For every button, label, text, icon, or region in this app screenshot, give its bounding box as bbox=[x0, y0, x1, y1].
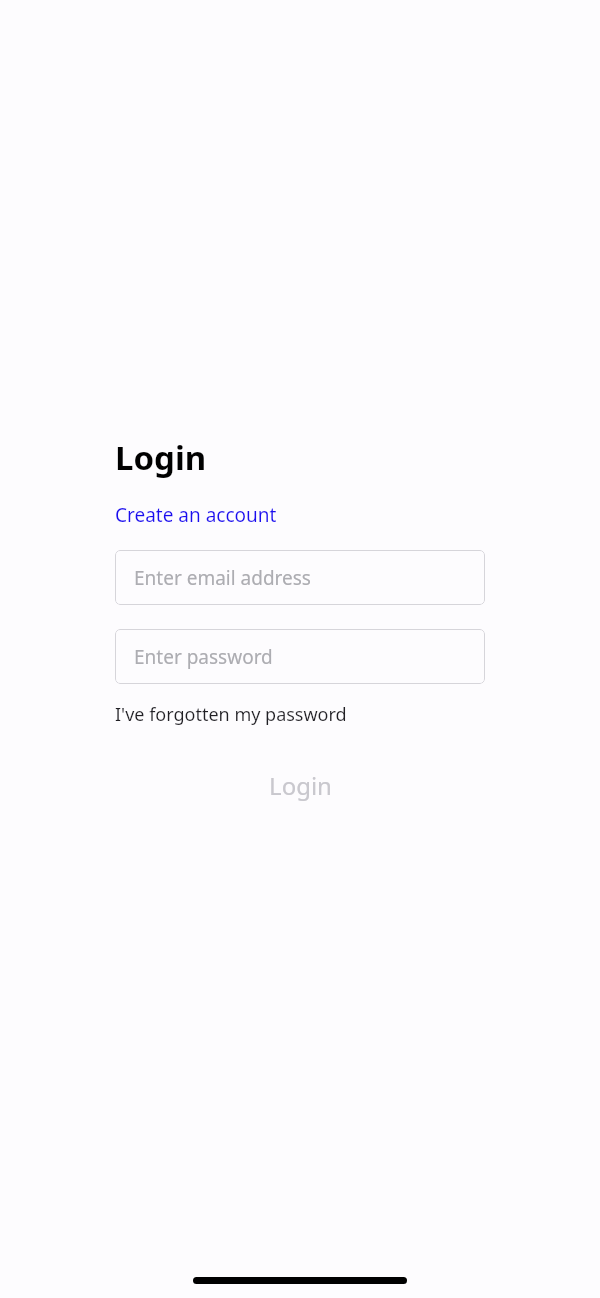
staticText: I've forgotten my password bbox=[115, 702, 347, 727]
staticText: Enter email address bbox=[134, 565, 311, 591]
staticText: Create an account bbox=[115, 502, 277, 528]
button[interactable]: Login bbox=[115, 765, 485, 805]
staticText: Login bbox=[269, 769, 332, 802]
button[interactable]: I've forgotten my password bbox=[115, 702, 347, 727]
staticText: Enter password bbox=[134, 644, 273, 670]
button[interactable]: Create an account bbox=[115, 502, 277, 528]
button[interactable]: Enter email address bbox=[115, 550, 485, 605]
staticText: Login bbox=[115, 435, 207, 480]
button[interactable]: Enter password bbox=[115, 629, 485, 684]
